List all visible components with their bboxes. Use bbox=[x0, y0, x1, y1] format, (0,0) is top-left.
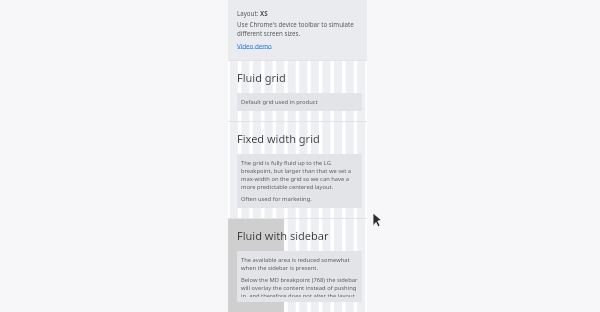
staticText: XS bbox=[260, 9, 268, 17]
staticText: Fluid with sidebar bbox=[237, 228, 329, 243]
staticText: Use Chrome's device toolbar to simulate … bbox=[237, 20, 358, 38]
button[interactable]: Video demo link bbox=[237, 42, 272, 50]
button[interactable]: Fluid grid bbox=[228, 61, 367, 121]
staticText: Below the MD breakpoint (768) the sideba… bbox=[241, 276, 358, 297]
button[interactable]: Fluid with sidebar bbox=[228, 219, 367, 312]
staticText: Often used for marketing. bbox=[241, 195, 312, 203]
staticText: Video demo bbox=[237, 42, 272, 50]
button[interactable]: Fixed width grid bbox=[228, 122, 367, 218]
staticText: Layout: bbox=[237, 9, 260, 17]
staticText: Fixed width grid bbox=[237, 131, 320, 146]
staticText: The grid is fully fluid up to the LG bre… bbox=[241, 159, 358, 191]
staticText: Fluid grid bbox=[237, 70, 286, 85]
staticText: Default grid used in product bbox=[241, 98, 318, 106]
staticText: The available area is reduced somewhat w… bbox=[241, 256, 358, 272]
